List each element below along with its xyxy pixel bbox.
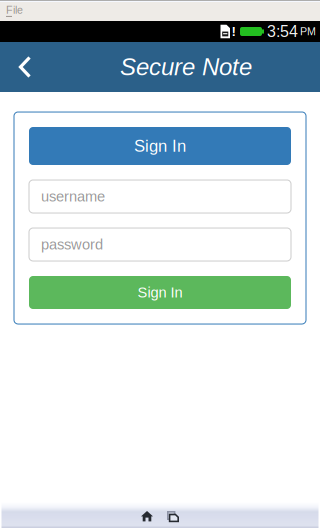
staticText: 3:54 xyxy=(267,23,298,40)
staticText: Secure Note xyxy=(120,54,252,80)
staticText: Sign In xyxy=(134,137,186,155)
staticText: File xyxy=(6,4,23,16)
button[interactable]: Home xyxy=(135,502,159,528)
staticText: PM xyxy=(300,25,316,37)
button[interactable]: Recent pages xyxy=(161,502,185,528)
button[interactable]: Sign In xyxy=(29,276,291,309)
staticText: Sign In xyxy=(137,284,182,301)
button[interactable]: File xyxy=(0,2,31,21)
staticText: password xyxy=(41,236,103,253)
staticText: username xyxy=(41,188,105,205)
button[interactable]: Back xyxy=(0,42,46,92)
staticText: ! xyxy=(231,24,235,39)
button[interactable]: Sign In xyxy=(29,127,291,165)
